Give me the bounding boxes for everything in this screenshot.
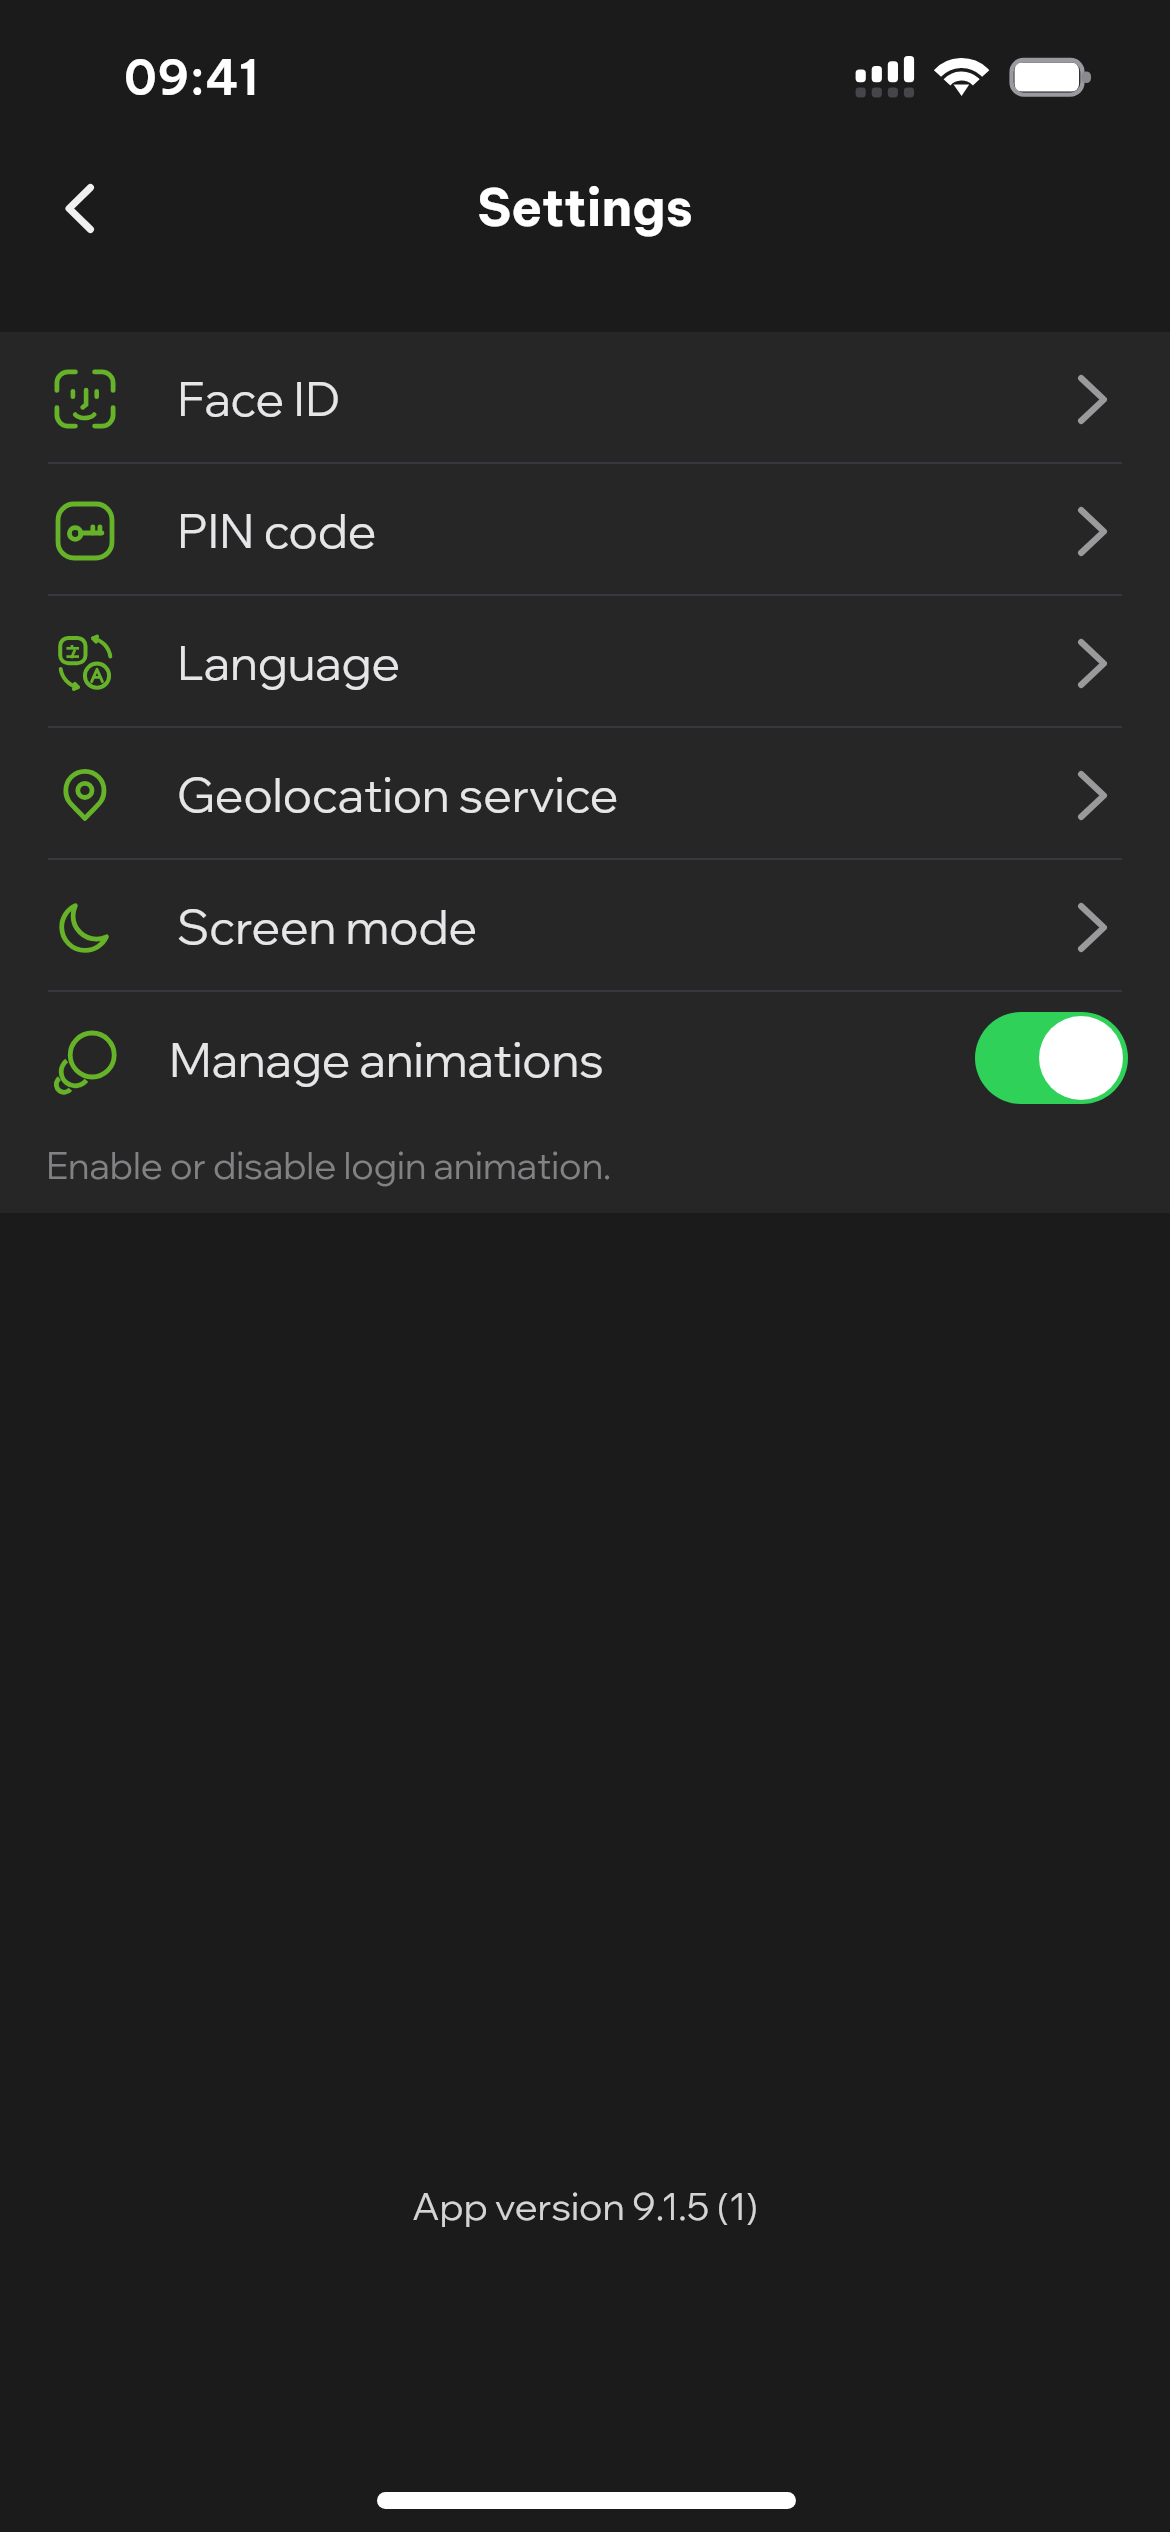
staticText: 09:41 xyxy=(124,47,259,107)
staticText: Enable or disable login animation. xyxy=(46,1142,612,1188)
button[interactable]: PIN code xyxy=(0,464,1170,594)
staticText: Screen mode xyxy=(177,896,478,956)
button[interactable]: Geolocation service xyxy=(0,728,1170,858)
staticText: Settings xyxy=(0,175,1170,240)
staticText: Manage animations xyxy=(169,1029,604,1089)
button[interactable]: Manage animations xyxy=(0,992,1170,1124)
button[interactable]: Language xyxy=(0,596,1170,726)
button[interactable]: Face ID xyxy=(0,332,1170,462)
staticText: Language xyxy=(177,632,401,692)
staticText: App version 9.1.5 (1) xyxy=(0,2182,1170,2230)
staticText: Face ID xyxy=(177,368,341,428)
staticText: PIN code xyxy=(177,500,377,560)
staticText: Geolocation service xyxy=(177,764,619,824)
button[interactable]: Screen mode xyxy=(0,860,1170,990)
button[interactable]: Back xyxy=(27,156,131,260)
